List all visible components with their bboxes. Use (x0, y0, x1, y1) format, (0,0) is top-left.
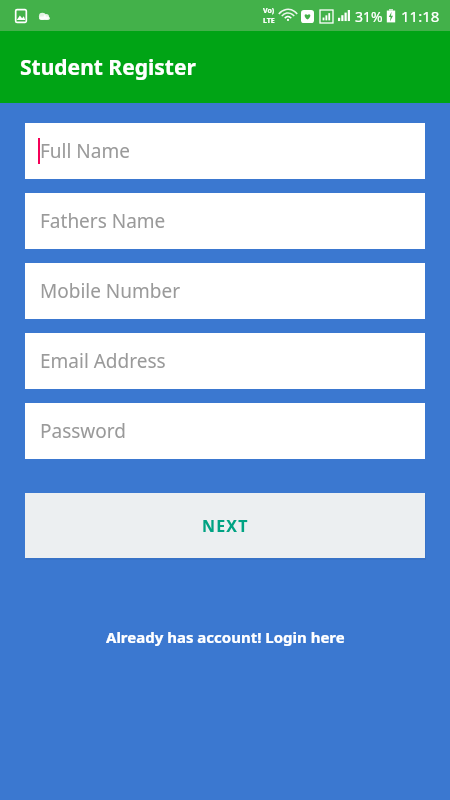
button[interactable]: Email Address (25, 333, 425, 389)
staticText: Vo) (263, 6, 275, 16)
staticText: Full Name (40, 138, 130, 164)
button[interactable]: Mobile Number (25, 263, 425, 319)
button[interactable]: Password (25, 403, 425, 459)
button[interactable]: Full Name (25, 123, 425, 179)
staticText: Email Address (40, 348, 166, 374)
staticText: LTE (263, 16, 275, 26)
staticText: Password (40, 418, 126, 444)
staticText: NEXT (202, 515, 249, 537)
button[interactable]: Already has account! Login here (0, 620, 450, 654)
staticText: Already has account! Login here (106, 627, 345, 647)
staticText: Student Register (20, 53, 196, 82)
button[interactable]: Fathers Name (25, 193, 425, 249)
button[interactable]: NEXT (25, 493, 425, 558)
staticText: 31% (355, 7, 383, 26)
staticText: Mobile Number (40, 278, 181, 304)
staticText: 11:18 (401, 6, 440, 26)
staticText: Fathers Name (40, 208, 166, 234)
